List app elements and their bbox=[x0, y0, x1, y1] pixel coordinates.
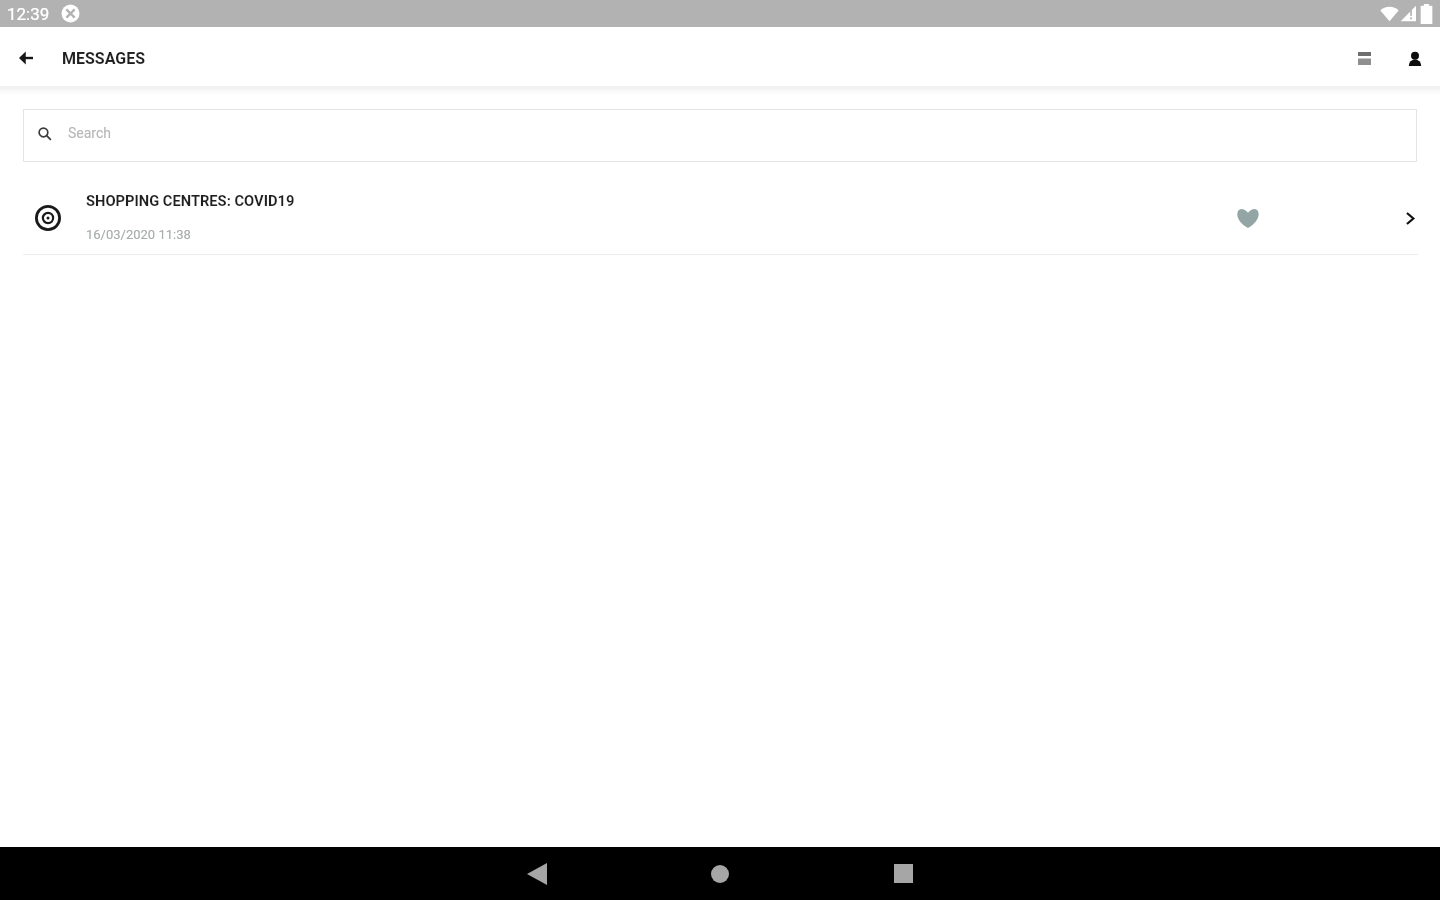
button[interactable]: Account bbox=[1391, 31, 1439, 89]
button[interactable]: Recents bbox=[879, 847, 927, 900]
staticText: SHOPPING CENTRES: COVID19 bbox=[86, 192, 295, 209]
staticText: 16/03/2020 11:38 bbox=[86, 227, 191, 242]
button[interactable]: Search bbox=[23, 109, 1417, 162]
button[interactable] bbox=[0, 182, 1440, 254]
button[interactable]: Favourite bbox=[1227, 197, 1269, 239]
staticText: Search bbox=[68, 125, 112, 141]
button[interactable]: Open message bbox=[1390, 198, 1430, 238]
button[interactable]: Home bbox=[696, 847, 744, 900]
button[interactable]: Sort bbox=[1340, 31, 1388, 86]
button[interactable]: Back bbox=[513, 847, 561, 900]
staticText: MESSAGES bbox=[62, 49, 146, 68]
staticText: 12:39 bbox=[7, 4, 50, 24]
button[interactable]: Back bbox=[2, 29, 50, 86]
